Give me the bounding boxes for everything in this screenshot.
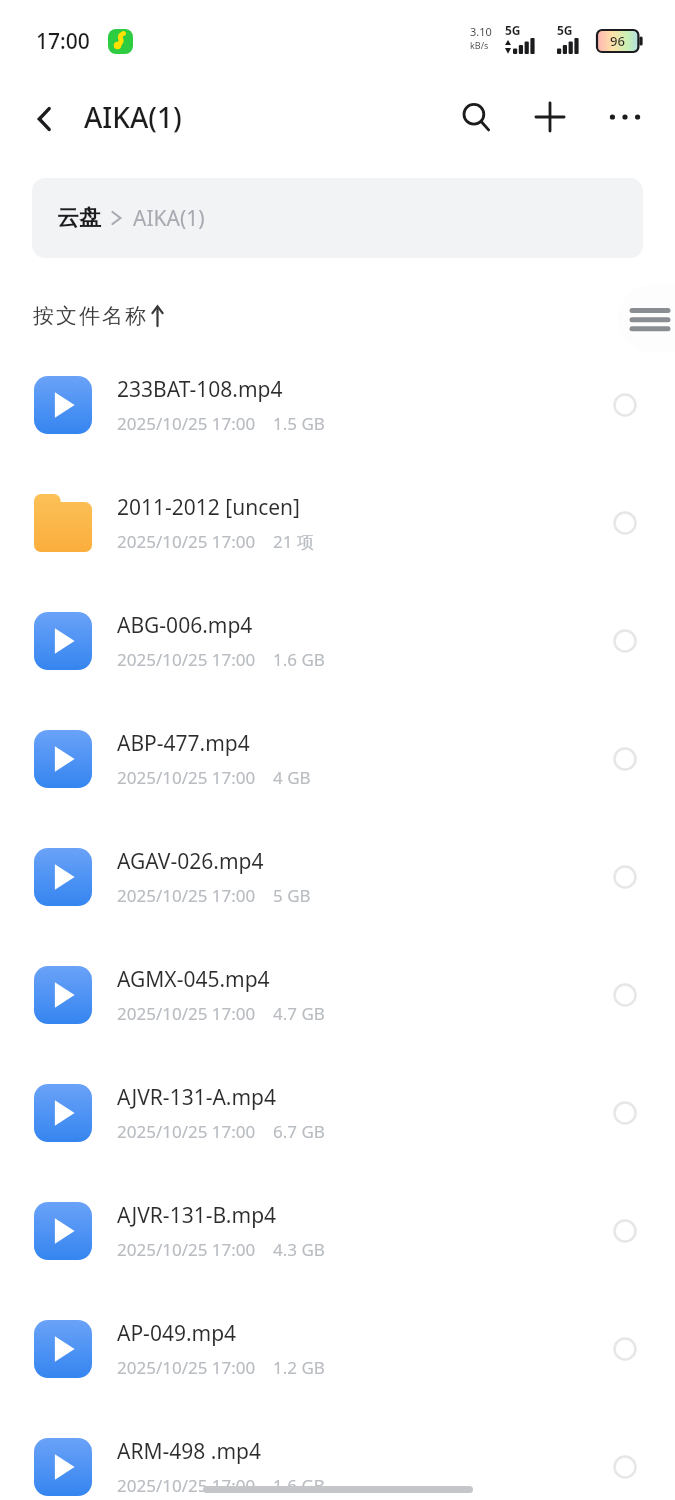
- button[interactable]: 233BAT-108.mp4: [0, 357, 675, 452]
- staticText: 5G: [557, 22, 573, 38]
- button[interactable]: Select 2011-2012 [uncen]: [601, 499, 649, 547]
- button[interactable]: ABP-477.mp4: [0, 711, 675, 806]
- staticText: ARM-498 .mp4: [117, 1437, 261, 1466]
- staticText: AGMX-045.mp4: [117, 965, 270, 994]
- button[interactable]: 云盘: [32, 178, 643, 258]
- staticText: 17:00: [36, 27, 90, 56]
- button[interactable]: ABG-006.mp4: [0, 593, 675, 688]
- staticText: 2025/10/25 17:00 1.5 GB: [117, 412, 325, 435]
- staticText: 2025/10/25 17:00 6.7 GB: [117, 1120, 325, 1143]
- staticText: 2025/10/25 17:00 21 项: [117, 530, 314, 553]
- button[interactable]: Select AJVR-131-B.mp4: [601, 1207, 649, 1255]
- staticText: 2025/10/25 17:00 5 GB: [117, 884, 311, 907]
- staticText: 2025/10/25 17:00 1.6 GB: [117, 1474, 325, 1497]
- button[interactable]: Search: [450, 91, 502, 143]
- button[interactable]: Select AP-049.mp4: [601, 1325, 649, 1373]
- button[interactable]: Add: [524, 91, 576, 143]
- button[interactable]: Select ABP-477.mp4: [601, 735, 649, 783]
- staticText: 云盘: [57, 204, 101, 232]
- staticText: AGAV-026.mp4: [117, 847, 264, 876]
- staticText: 按文件名称: [32, 303, 147, 329]
- button[interactable]: Sort options: [618, 285, 675, 352]
- button[interactable]: AGAV-026.mp4: [0, 829, 675, 924]
- button[interactable]: Select AJVR-131-A.mp4: [601, 1089, 649, 1137]
- button[interactable]: Back: [18, 92, 72, 146]
- button[interactable]: AJVR-131-B.mp4: [0, 1183, 675, 1278]
- button[interactable]: ARM-498 .mp4: [0, 1419, 675, 1500]
- staticText: 2011-2012 [uncen]: [117, 493, 300, 522]
- button[interactable]: Select 233BAT-108.mp4: [601, 381, 649, 429]
- staticText: 2025/10/25 17:00 1.2 GB: [117, 1356, 325, 1379]
- button[interactable]: Select ARM-498 .mp4: [601, 1443, 649, 1491]
- staticText: AP-049.mp4: [117, 1319, 237, 1348]
- staticText: 5G: [505, 22, 521, 38]
- staticText: AIKA(1): [84, 98, 182, 136]
- staticText: 2025/10/25 17:00 4.3 GB: [117, 1238, 325, 1261]
- staticText: 2025/10/25 17:00 4 GB: [117, 766, 311, 789]
- button[interactable]: Select AGMX-045.mp4: [601, 971, 649, 1019]
- button[interactable]: AP-049.mp4: [0, 1301, 675, 1396]
- button[interactable]: 按文件名称: [26, 290, 172, 342]
- button[interactable]: AJVR-131-A.mp4: [0, 1065, 675, 1160]
- button[interactable]: Select AGAV-026.mp4: [601, 853, 649, 901]
- staticText: ABP-477.mp4: [117, 729, 250, 758]
- button[interactable]: 2011-2012 [uncen]: [0, 475, 675, 570]
- staticText: kB/s: [470, 39, 489, 51]
- button[interactable]: AGMX-045.mp4: [0, 947, 675, 1042]
- staticText: AJVR-131-A.mp4: [117, 1083, 277, 1112]
- staticText: 2025/10/25 17:00 4.7 GB: [117, 1002, 325, 1025]
- staticText: 233BAT-108.mp4: [117, 375, 283, 404]
- staticText: 96: [610, 32, 625, 50]
- staticText: 3.10: [470, 24, 492, 39]
- staticText: AIKA(1): [133, 204, 205, 233]
- button[interactable]: More options: [599, 91, 651, 143]
- staticText: ABG-006.mp4: [117, 611, 253, 640]
- button[interactable]: Select ABG-006.mp4: [601, 617, 649, 665]
- staticText: 2025/10/25 17:00 1.6 GB: [117, 648, 325, 671]
- staticText: AJVR-131-B.mp4: [117, 1201, 277, 1230]
